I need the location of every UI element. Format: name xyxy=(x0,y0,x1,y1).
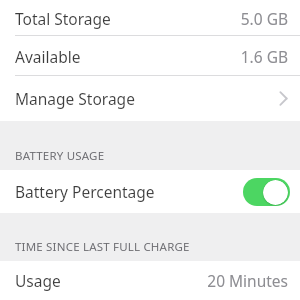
staticText: Manage Storage xyxy=(15,88,135,109)
staticText: Usage xyxy=(15,270,61,291)
staticText: Total Storage xyxy=(15,8,111,29)
button[interactable]: Battery Percentage toggle xyxy=(243,178,290,206)
button[interactable]: Battery Percentage xyxy=(0,170,300,213)
button[interactable]: Available xyxy=(0,36,300,76)
staticText: 1.6 GB xyxy=(240,46,288,67)
staticText: 20 Minutes xyxy=(207,270,288,291)
button[interactable]: Total Storage xyxy=(0,0,300,36)
staticText: 5.0 GB xyxy=(240,8,288,29)
button[interactable]: Manage Storage xyxy=(0,76,300,121)
staticText: Battery Percentage xyxy=(15,181,155,202)
staticText: Available xyxy=(15,46,81,67)
button[interactable]: Usage xyxy=(0,261,300,300)
staticText: BATTERY USAGE xyxy=(15,148,105,164)
staticText: TIME SINCE LAST FULL CHARGE xyxy=(15,239,190,255)
